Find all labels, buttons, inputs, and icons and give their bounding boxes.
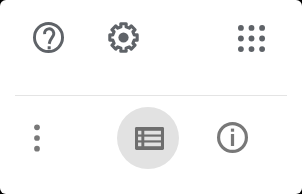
- button[interactable]: Help: [33, 22, 64, 53]
- button[interactable]: Info: [217, 122, 248, 153]
- button[interactable]: More options: [31, 124, 43, 152]
- button[interactable]: Settings: [108, 22, 139, 53]
- button[interactable]: List view: [117, 107, 179, 169]
- button[interactable]: Google apps: [236, 23, 267, 54]
